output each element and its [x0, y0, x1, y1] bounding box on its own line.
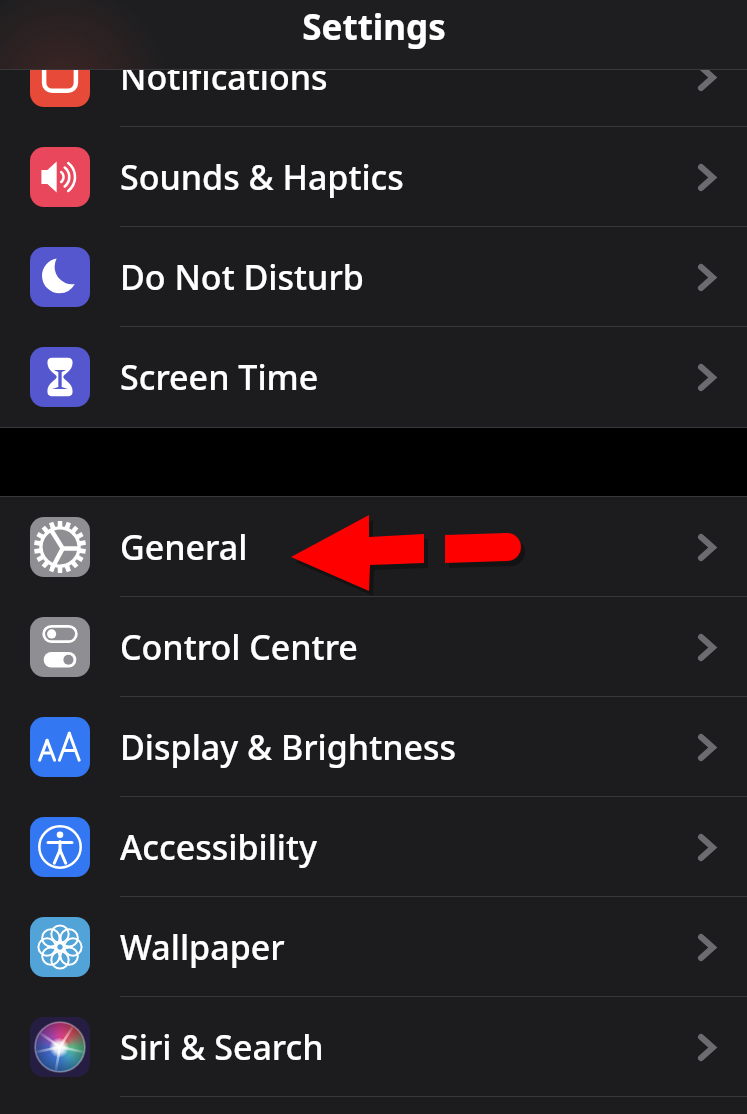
- staticText: Sounds & Haptics: [120, 154, 404, 200]
- staticText: Do Not Disturb: [120, 254, 364, 300]
- button[interactable]: Do Not Disturb: [0, 227, 747, 327]
- button[interactable]: Display & Brightness: [0, 697, 747, 797]
- staticText: General: [120, 524, 248, 570]
- button[interactable]: Screen Time: [0, 327, 747, 427]
- button[interactable]: Control Centre: [0, 597, 747, 697]
- staticText: Control Centre: [120, 624, 358, 670]
- staticText: Display & Brightness: [120, 724, 457, 770]
- staticText: Screen Time: [120, 354, 319, 400]
- button[interactable]: Sounds & Haptics: [0, 127, 747, 227]
- staticText: Settings: [302, 3, 446, 51]
- button[interactable]: General: [0, 497, 747, 597]
- button[interactable]: Siri & Search: [0, 997, 747, 1097]
- button[interactable]: Wallpaper: [0, 897, 747, 997]
- button[interactable]: Notifications: [0, 27, 747, 127]
- staticText: Siri & Search: [120, 1024, 324, 1070]
- staticText: Wallpaper: [120, 924, 285, 970]
- staticText: Accessibility: [120, 824, 317, 870]
- button[interactable]: Accessibility: [0, 797, 747, 897]
- staticText: Notifications: [120, 54, 328, 100]
